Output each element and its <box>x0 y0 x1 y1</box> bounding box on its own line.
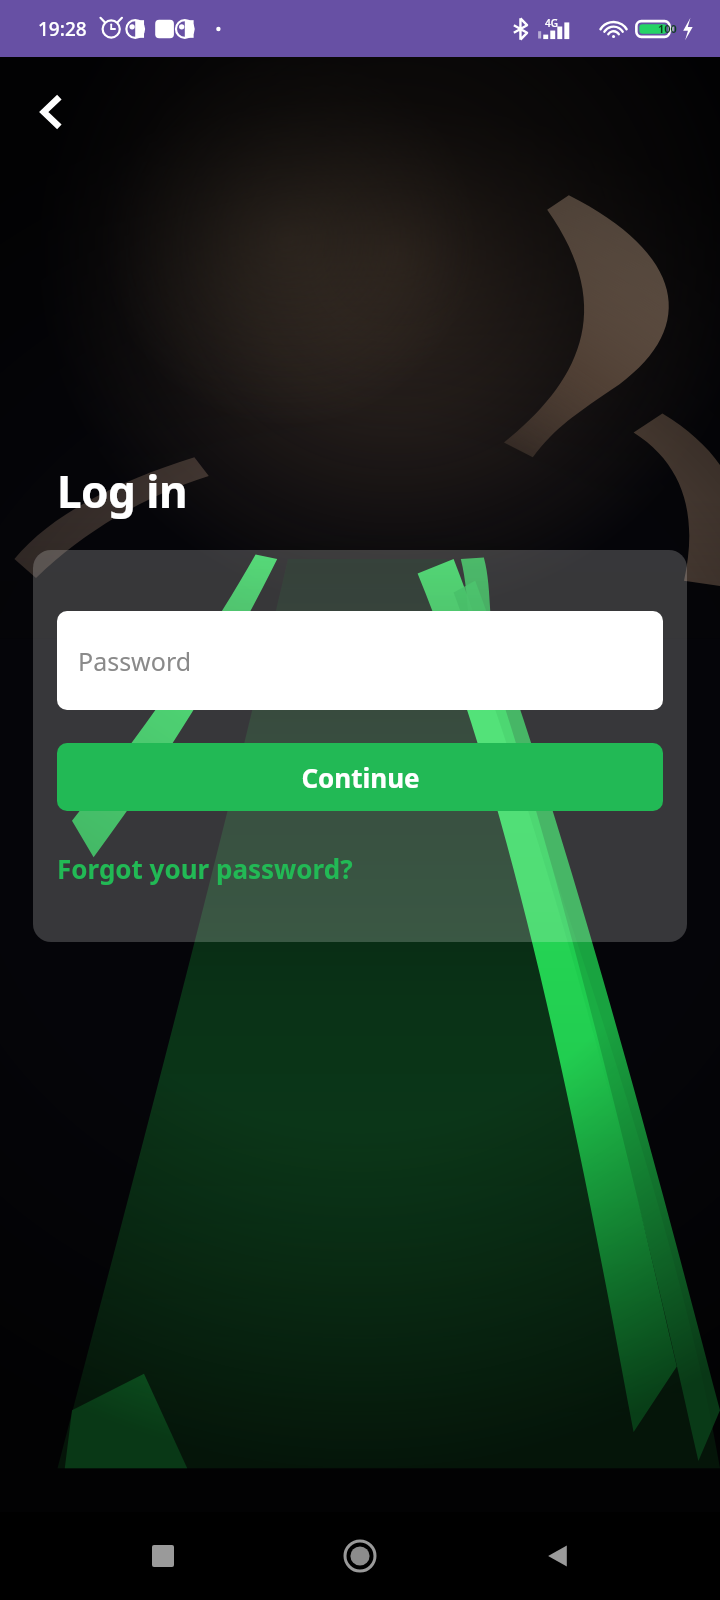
staticText: Continue <box>301 760 420 795</box>
staticText: 19:28 <box>38 16 87 42</box>
button[interactable]: Home <box>325 1521 395 1591</box>
button[interactable]: Forgot your password? <box>57 847 353 890</box>
button[interactable]: Password <box>57 611 663 710</box>
staticText: Log in <box>57 461 188 521</box>
button[interactable]: Continue <box>57 743 663 811</box>
button[interactable]: Back <box>523 1521 593 1591</box>
staticText: 4G <box>545 16 558 30</box>
staticText: 100 <box>658 21 677 36</box>
staticText: Forgot your password? <box>57 851 353 886</box>
button[interactable]: Recent apps <box>128 1521 198 1591</box>
button[interactable]: Back <box>22 83 80 141</box>
staticText: Password <box>78 644 192 678</box>
